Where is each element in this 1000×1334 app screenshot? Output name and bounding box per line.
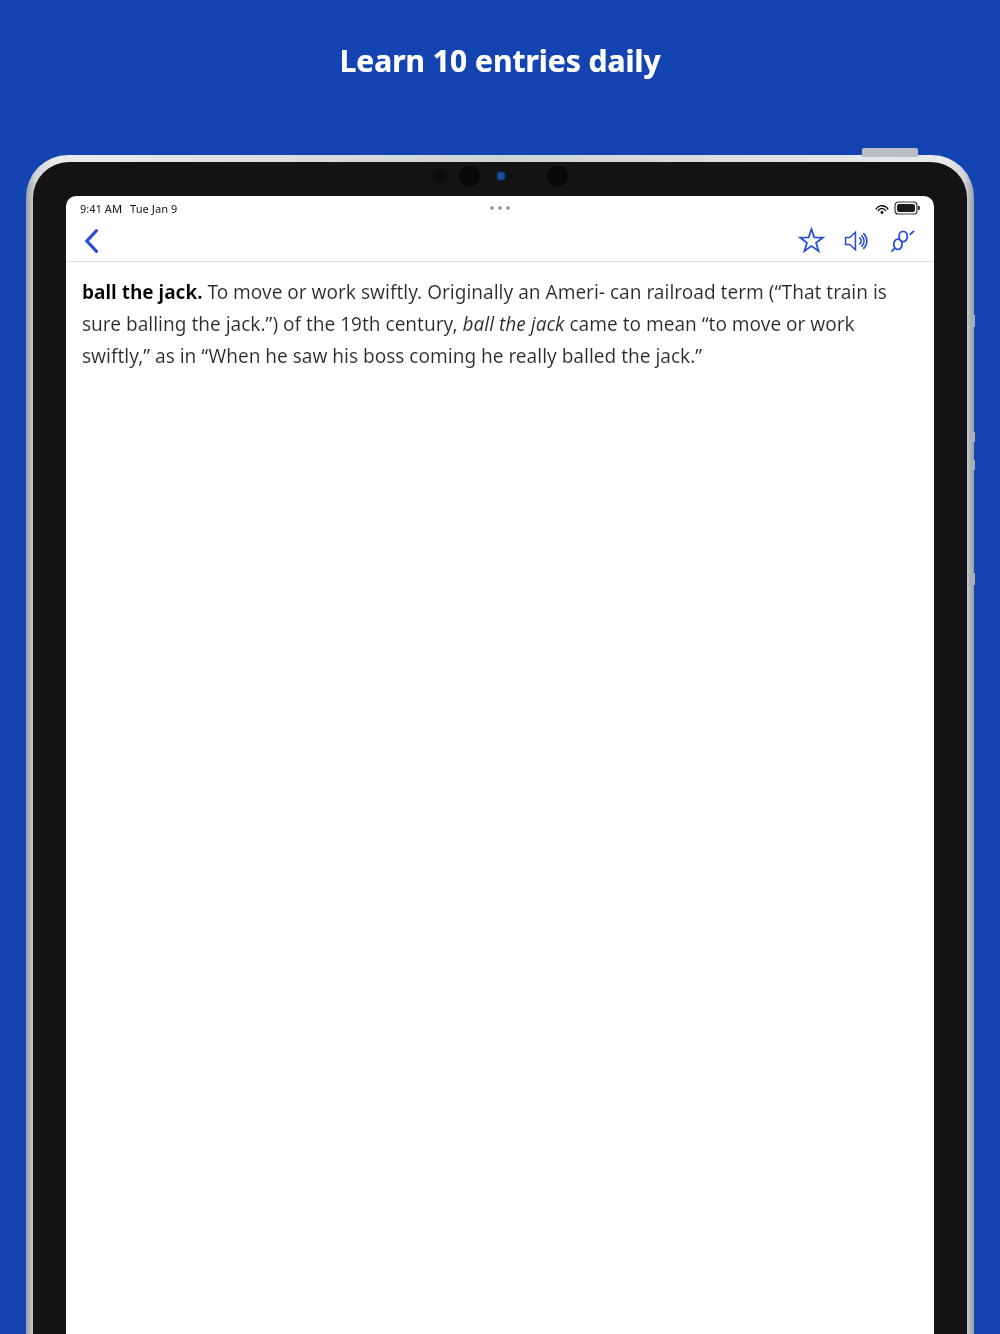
button[interactable]: Link [882,220,924,261]
staticText: ball the jack. To move or work swiftly. … [82,279,918,369]
button[interactable]: Favorite [790,220,832,261]
staticText: Learn 10 entries daily [339,40,661,81]
staticText: Tue Jan 9 [130,201,178,216]
button[interactable]: Pronounce [836,220,878,261]
staticText: 9:41 AM [80,201,123,216]
button[interactable]: Back [72,221,112,261]
